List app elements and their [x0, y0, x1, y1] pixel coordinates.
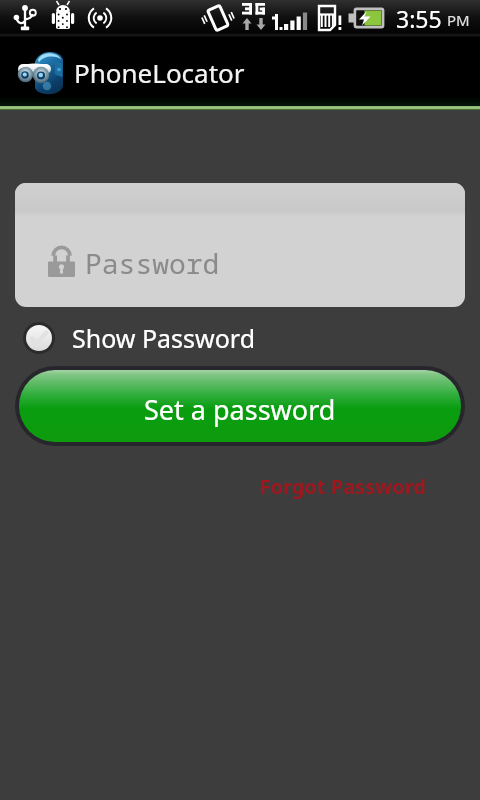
staticText: Password — [85, 244, 220, 282]
staticText: PhoneLocator — [74, 55, 245, 90]
button[interactable]: Set a password — [19, 370, 461, 442]
button[interactable]: Show Password — [9, 321, 266, 355]
button[interactable]: PhoneLocator home — [15, 47, 65, 97]
button[interactable]: Password — [15, 183, 465, 307]
staticText: Set a password — [144, 391, 336, 428]
button[interactable]: Forgot Password — [259, 473, 426, 500]
staticText: Show Password — [72, 321, 256, 355]
staticText: 3:55 — [396, 3, 442, 34]
staticText: PM — [447, 10, 470, 30]
